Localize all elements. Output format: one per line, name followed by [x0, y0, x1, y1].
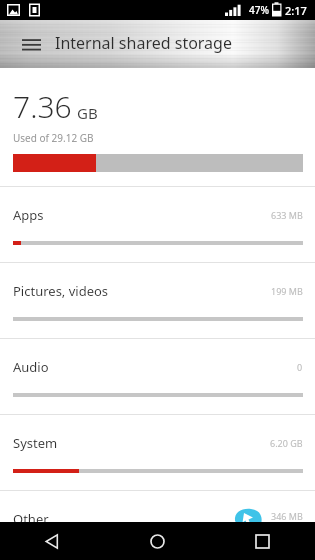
staticText: Other — [13, 510, 49, 522]
staticText: System — [13, 434, 58, 452]
staticText: 6.20 GB — [270, 437, 303, 449]
button[interactable]: Back — [0, 522, 105, 560]
staticText: 47% — [249, 3, 269, 17]
button[interactable]: Recent apps — [210, 522, 315, 560]
staticText: Internal shared storage — [55, 32, 232, 54]
staticText: mobile-review.com — [222, 525, 293, 536]
staticText: 7.36 — [13, 86, 72, 127]
staticText: 199 MB — [271, 285, 303, 297]
button[interactable]: Other — [0, 491, 315, 522]
staticText: 346 MB — [271, 510, 303, 522]
staticText: Apps — [13, 206, 44, 224]
button[interactable]: System — [0, 415, 315, 490]
staticText: Used of 29.12 GB — [13, 131, 94, 145]
staticText: 633 MB — [271, 209, 303, 221]
staticText: GB — [77, 103, 98, 123]
staticText: 2:17 — [285, 3, 307, 18]
button[interactable]: Home — [105, 522, 210, 560]
staticText: Audio — [13, 358, 49, 376]
button[interactable]: Apps — [0, 187, 315, 262]
button[interactable]: Audio — [0, 339, 315, 414]
staticText: 0 — [297, 361, 303, 373]
button[interactable]: Open navigation menu — [10, 23, 52, 65]
staticText: Pictures, videos — [13, 282, 109, 300]
button[interactable]: Pictures, videos — [0, 263, 315, 338]
